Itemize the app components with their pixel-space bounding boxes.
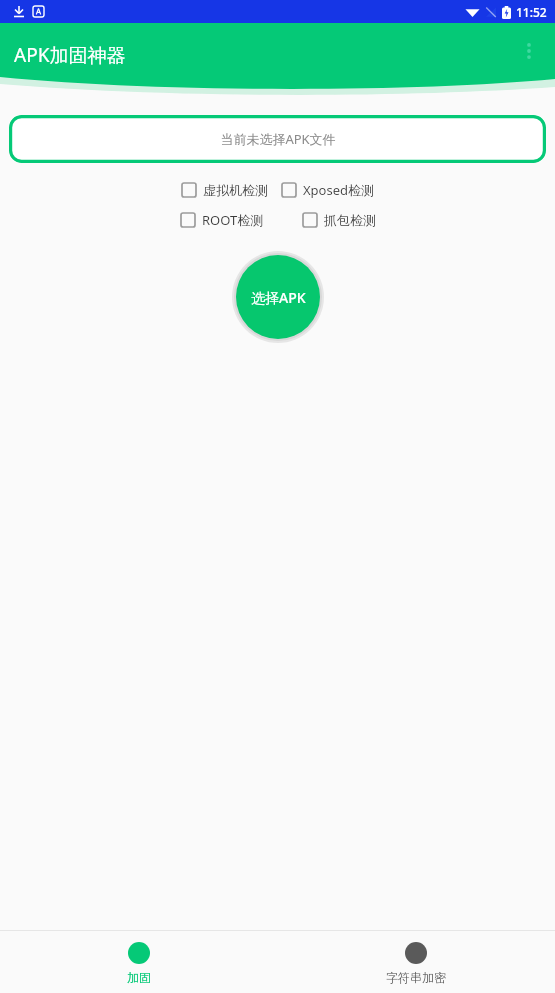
button[interactable]: 字符串加密 (277, 931, 555, 993)
staticText: 字符串加密 (386, 970, 446, 985)
staticText: Xposed检测 (303, 181, 375, 199)
button[interactable]: 抓包检测 (302, 210, 376, 230)
staticText: 11:52 (516, 4, 547, 20)
button[interactable]: Xposed检测 (281, 179, 375, 201)
button[interactable]: 选择APK (236, 255, 320, 339)
staticText: 虚拟机检测 (203, 182, 268, 198)
button[interactable]: 加固 (0, 931, 277, 993)
staticText: 加固 (127, 970, 151, 985)
button[interactable]: 当前未选择APK文件 (9, 115, 546, 163)
staticText: APK加固神器 (14, 42, 126, 68)
staticText: 选择APK (251, 288, 306, 307)
button[interactable]: ROOT检测 (180, 209, 264, 231)
staticText: ROOT检测 (202, 211, 264, 229)
staticText: 抓包检测 (324, 212, 376, 228)
button[interactable]: 虚拟机检测 (181, 180, 268, 200)
button[interactable]: More options (509, 31, 549, 71)
staticText: 当前未选择APK文件 (220, 130, 336, 148)
